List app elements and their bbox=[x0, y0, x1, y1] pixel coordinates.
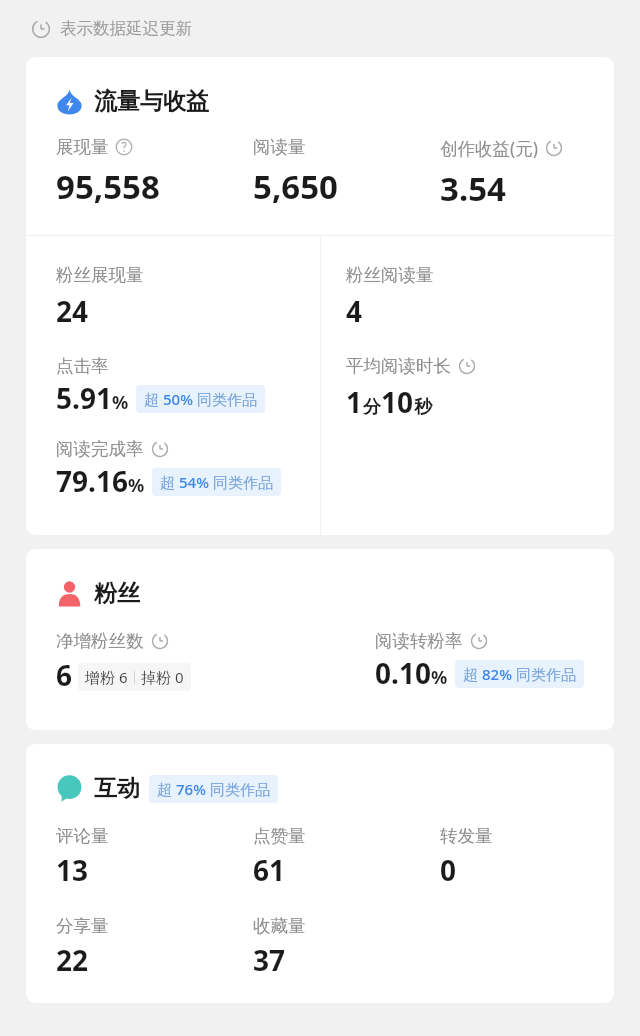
staticText: 54% bbox=[179, 472, 209, 492]
staticText: 0.10 bbox=[375, 654, 431, 692]
other: Delayed data bbox=[458, 357, 476, 375]
staticText: 同类作品 bbox=[209, 472, 273, 492]
staticText: 5,650 bbox=[253, 164, 338, 209]
staticText: 互动 bbox=[94, 774, 140, 803]
staticText: 超 bbox=[463, 664, 482, 684]
other: Info bbox=[115, 138, 133, 156]
staticText: 分享量 bbox=[56, 915, 109, 937]
staticText: 粉丝展现量 bbox=[56, 264, 144, 286]
staticText: 超 bbox=[157, 779, 176, 799]
staticText: 表示数据延迟更新 bbox=[60, 18, 192, 39]
staticText: 点赞量 bbox=[253, 825, 306, 847]
staticText: 掉粉 bbox=[141, 667, 175, 687]
staticText: 展现量 bbox=[56, 136, 109, 158]
staticText: 1 bbox=[346, 383, 363, 421]
staticText: 流量与收益 bbox=[94, 87, 209, 116]
staticText: 82% bbox=[482, 664, 512, 684]
staticText: 点击率 bbox=[56, 355, 109, 377]
staticText: 粉丝 bbox=[94, 579, 140, 608]
staticText: 0 bbox=[440, 851, 457, 889]
staticText: 净增粉丝数 bbox=[56, 630, 144, 652]
other: Delayed data bbox=[31, 19, 51, 39]
staticText: 增粉 bbox=[85, 667, 119, 687]
staticText: 61 bbox=[253, 851, 286, 889]
staticText: 4 bbox=[346, 292, 363, 330]
button[interactable]: 粉丝 bbox=[26, 549, 614, 730]
other: Delayed data bbox=[151, 632, 169, 650]
other: Delayed data bbox=[470, 632, 488, 650]
staticText: 10 bbox=[381, 383, 414, 421]
staticText: 分 bbox=[363, 396, 381, 419]
staticText: 6 bbox=[119, 667, 128, 687]
staticText: 收藏量 bbox=[253, 915, 306, 937]
staticText: 同类作品 bbox=[512, 664, 576, 684]
staticText: 平均阅读时长 bbox=[346, 355, 451, 377]
staticText: 创作收益(元) bbox=[440, 136, 538, 160]
staticText: 超 bbox=[144, 389, 163, 409]
staticText: 37 bbox=[253, 941, 286, 979]
button[interactable]: 互动 bbox=[26, 744, 614, 1003]
button[interactable]: 流量与收益 bbox=[26, 57, 614, 535]
staticText: 13 bbox=[56, 851, 89, 889]
staticText: 24 bbox=[56, 292, 89, 330]
staticText: 50% bbox=[163, 389, 193, 409]
staticText: 粉丝阅读量 bbox=[346, 264, 434, 286]
other: Delayed data bbox=[151, 440, 169, 458]
staticText: 95,558 bbox=[56, 164, 160, 209]
staticText: 评论量 bbox=[56, 825, 109, 847]
staticText: 阅读量 bbox=[253, 136, 306, 158]
staticText: 阅读完成率 bbox=[56, 438, 144, 460]
staticText: 超 bbox=[160, 472, 179, 492]
staticText: % bbox=[431, 665, 448, 690]
staticText: % bbox=[112, 390, 129, 415]
staticText: 76% bbox=[176, 779, 206, 799]
staticText: 3.54 bbox=[440, 166, 506, 211]
staticText: 秒 bbox=[414, 396, 432, 419]
staticText: 阅读转粉率 bbox=[375, 630, 463, 652]
staticText: 同类作品 bbox=[193, 389, 257, 409]
staticText: % bbox=[128, 473, 145, 498]
staticText: 同类作品 bbox=[206, 779, 270, 799]
staticText: 6 bbox=[56, 656, 73, 694]
staticText: 79.16 bbox=[56, 462, 128, 500]
staticText: 5.91 bbox=[56, 379, 112, 417]
staticText: 0 bbox=[175, 667, 184, 687]
other: Delayed data bbox=[545, 139, 563, 157]
staticText: 22 bbox=[56, 941, 89, 979]
staticText: 转发量 bbox=[440, 825, 493, 847]
